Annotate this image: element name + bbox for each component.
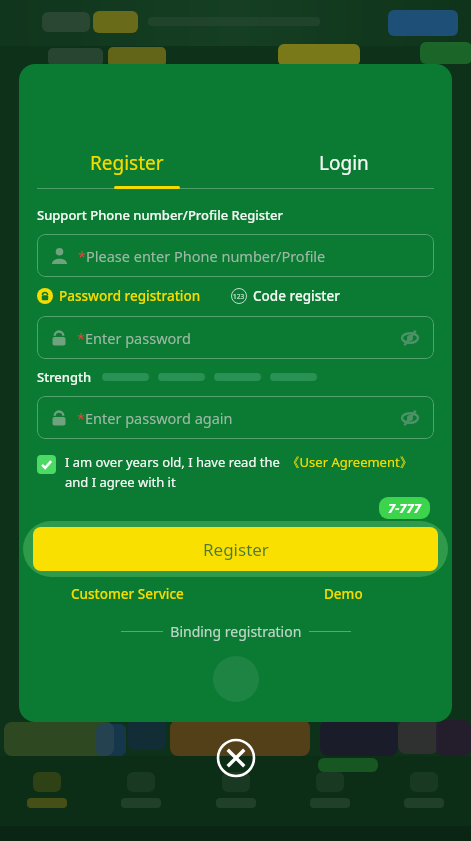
staticText: Support Phone number/Profile Register: [37, 206, 283, 224]
staticText: 123: [233, 292, 245, 301]
staticText: Customer Service: [71, 585, 184, 603]
button[interactable]: *Please enter Phone number/Profile: [37, 234, 434, 277]
button[interactable]: Close: [216, 738, 256, 778]
button[interactable]: Login: [235, 140, 452, 186]
staticText: *Enter password: [77, 328, 191, 348]
staticText: Password registration: [59, 287, 201, 305]
staticText: Strength: [37, 368, 92, 386]
button[interactable]: Password registration: [37, 287, 201, 305]
button[interactable]: I am over years old, I have read the 《Us…: [37, 453, 434, 491]
button[interactable]: Toggle password visibility: [399, 407, 421, 429]
button[interactable]: Demo: [235, 585, 452, 603]
staticText: Login: [319, 150, 369, 176]
staticText: I am over years old, I have read the 《Us…: [65, 453, 413, 491]
button[interactable]: *Enter password again: [37, 396, 434, 439]
button[interactable]: Toggle password visibility: [399, 327, 421, 349]
staticText: Code register: [253, 287, 340, 305]
staticText: Demo: [324, 585, 363, 603]
button[interactable]: Customer Service: [19, 585, 235, 603]
button[interactable]: *Enter password: [37, 316, 434, 359]
staticText: *Please enter Phone number/Profile: [78, 246, 326, 266]
button[interactable]: Register: [19, 140, 235, 186]
button[interactable]: Register: [33, 527, 438, 571]
staticText: 7-777: [388, 499, 421, 517]
staticText: *Enter password again: [77, 408, 233, 428]
staticText: Binding registration: [163, 622, 309, 641]
staticText: Register: [203, 538, 269, 561]
staticText: Register: [90, 150, 164, 176]
button[interactable]: 123: [231, 287, 340, 305]
button[interactable]: Social login: [213, 656, 259, 702]
